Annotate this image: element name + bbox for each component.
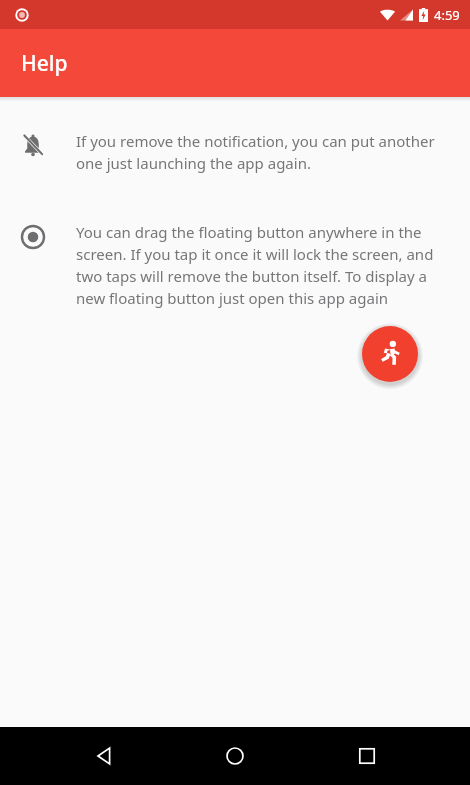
- button[interactable]: Home: [207, 728, 263, 784]
- button[interactable]: Recent apps: [339, 728, 395, 784]
- button[interactable]: Floating button: [0, 222, 470, 309]
- staticText: 4:59: [434, 6, 460, 24]
- other: Notifications off: [20, 133, 46, 159]
- button[interactable]: Notifications off: [0, 131, 470, 174]
- button[interactable]: Back: [76, 728, 132, 784]
- staticText: Help: [21, 49, 68, 78]
- other: Floating button: [20, 224, 46, 250]
- staticText: You can drag the floating button anywher…: [76, 222, 458, 309]
- staticText: If you remove the notification, you can …: [76, 131, 458, 174]
- button[interactable]: Start running: [362, 326, 418, 382]
